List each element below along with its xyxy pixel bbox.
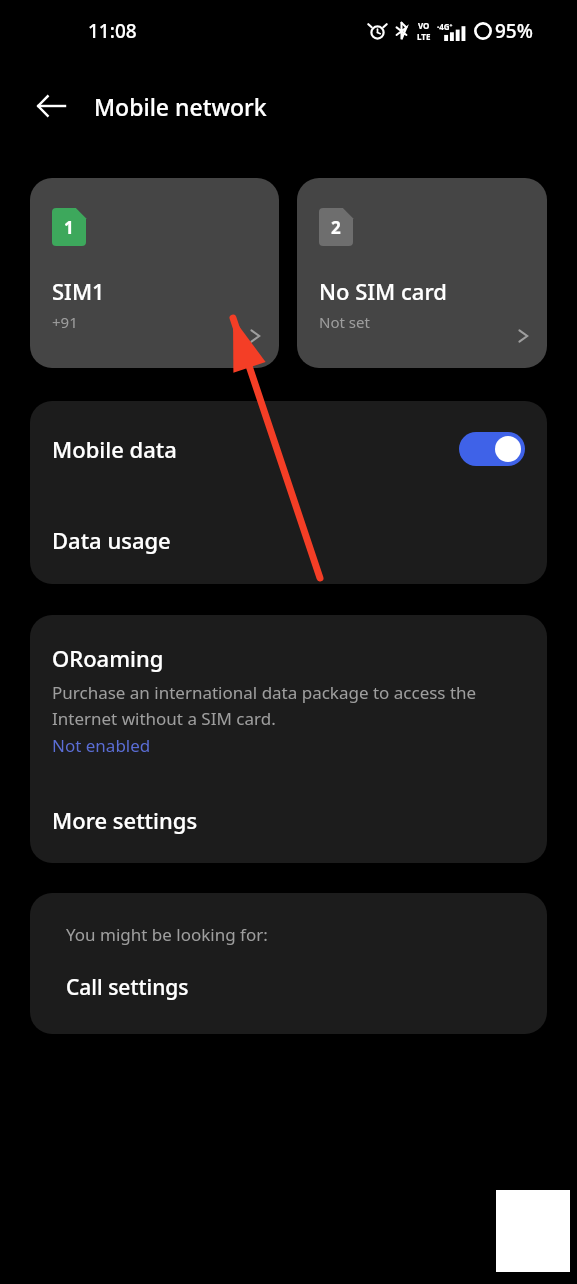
staticText: SIM1 xyxy=(52,276,105,306)
staticText: More settings xyxy=(52,805,198,835)
staticText: Call settings xyxy=(66,973,189,1002)
staticText: Mobile network xyxy=(94,91,267,122)
button[interactable]: 2 xyxy=(297,178,547,368)
button[interactable]: More settings xyxy=(30,777,547,863)
staticText: 1 xyxy=(64,216,74,239)
staticText: 2 xyxy=(331,216,341,239)
staticText: Not set xyxy=(319,312,370,332)
staticText: ·4G⁺ xyxy=(437,21,453,32)
button[interactable]: ORoaming xyxy=(30,615,547,777)
staticText: 11:08 xyxy=(88,18,137,44)
button[interactable]: Call settings xyxy=(30,946,547,1028)
staticText: +91 xyxy=(52,312,78,332)
button[interactable]: Back xyxy=(22,77,80,135)
staticText: Mobile data xyxy=(52,434,459,464)
button[interactable]: 1 xyxy=(30,178,279,368)
staticText: LTE xyxy=(417,31,431,42)
button[interactable]: Mobile data xyxy=(30,401,547,496)
button[interactable]: Data usage xyxy=(30,496,547,584)
staticText: Data usage xyxy=(52,525,171,555)
staticText: Not enabled xyxy=(52,734,151,757)
staticText: ORoaming xyxy=(52,643,164,673)
staticText: No SIM card xyxy=(319,276,447,306)
button[interactable]: Mobile data toggle xyxy=(459,432,525,466)
staticText: 95% xyxy=(495,18,533,44)
staticText: Purchase an international data package t… xyxy=(52,681,525,730)
staticText: VO xyxy=(418,20,430,31)
staticText: You might be looking for: xyxy=(66,923,268,946)
